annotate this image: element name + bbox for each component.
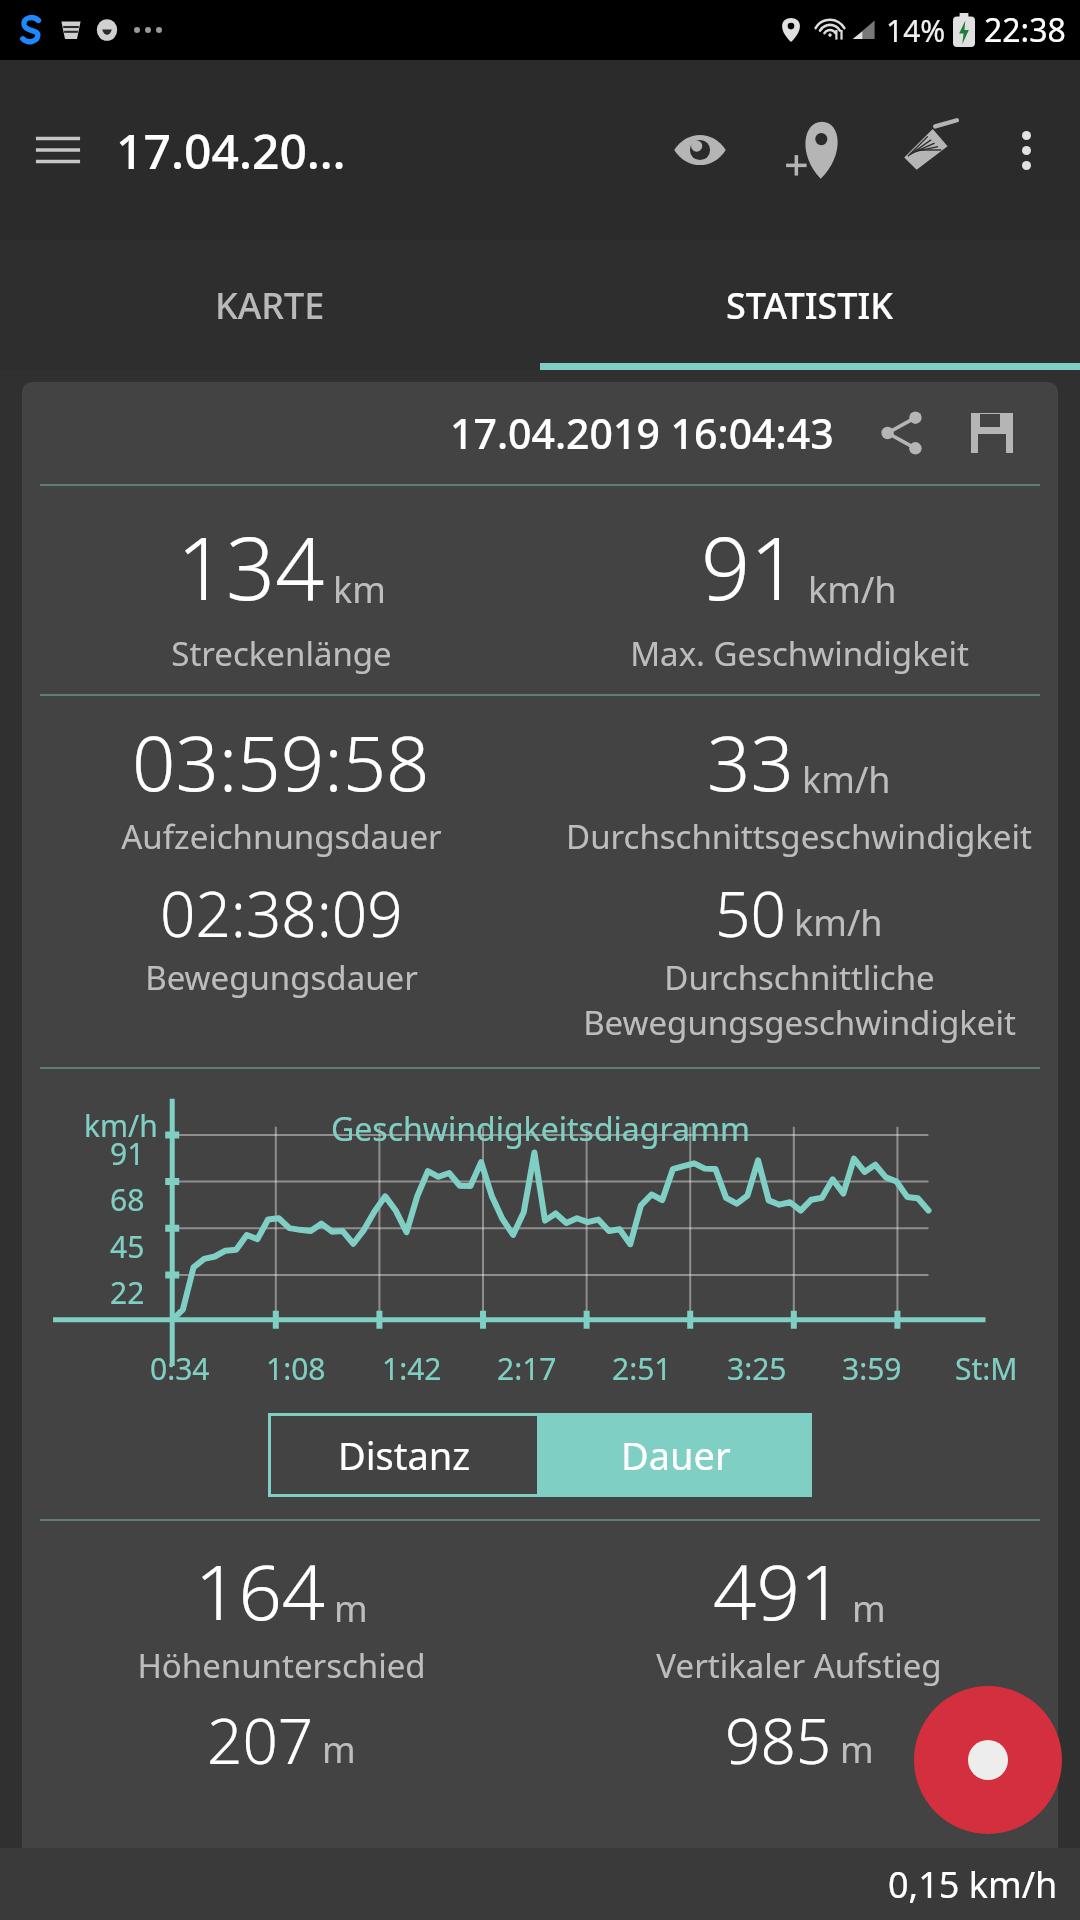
staticText: km — [333, 565, 386, 614]
staticText: 3:25 — [727, 1348, 787, 1389]
staticText: Distanz — [338, 1429, 471, 1481]
button[interactable]: Menü — [22, 114, 94, 186]
staticText: 3:59 — [842, 1348, 902, 1389]
staticText: 91 — [701, 508, 800, 625]
button[interactable]: KARTE — [0, 240, 540, 370]
staticText: 0,15 km/h — [888, 1860, 1058, 1909]
staticText: km/h — [802, 755, 891, 804]
staticText: 68 — [110, 1179, 145, 1220]
staticText: 50 — [715, 871, 786, 955]
staticText: m — [852, 1584, 886, 1633]
staticText: 02:38:09 — [160, 871, 403, 955]
button[interactable]: STATISTIK — [540, 240, 1080, 370]
staticText: 33 — [707, 710, 794, 814]
staticText: 2:17 — [497, 1348, 557, 1389]
button[interactable]: Teilen — [870, 401, 934, 465]
staticText: Geschwindigkeitsdiagramm — [331, 1107, 750, 1151]
staticText: m — [322, 1725, 356, 1774]
button[interactable]: Speichern — [960, 401, 1024, 465]
button[interactable]: Aufräumen — [886, 107, 972, 193]
button[interactable]: Aufnahme starten — [914, 1686, 1062, 1834]
staticText: 17.04.2019 16:04:43 — [450, 405, 834, 461]
staticText: km/h — [794, 898, 883, 947]
staticText: 2:51 — [612, 1348, 672, 1389]
staticText: m — [334, 1584, 368, 1633]
staticText: 491 — [713, 1539, 844, 1643]
staticText: m — [840, 1725, 874, 1774]
staticText: 1:08 — [266, 1348, 326, 1389]
staticText: Durchschnittliche Bewegungsgeschwindigke… — [583, 955, 1016, 1045]
staticText: STATISTIK — [726, 281, 894, 330]
staticText: Vertikaler Aufstieg — [656, 1643, 942, 1688]
staticText: 207 — [207, 1698, 314, 1782]
staticText: Aufzeichnungsdauer — [121, 814, 442, 859]
staticText: 14% — [886, 10, 946, 51]
staticText: 03:59:58 — [132, 710, 430, 814]
staticText: km/h — [808, 565, 897, 614]
button[interactable]: Ansicht — [660, 110, 740, 190]
staticText: 45 — [110, 1226, 145, 1267]
staticText: Bewegungsdauer — [145, 955, 418, 1000]
staticText: Dauer — [621, 1429, 731, 1481]
staticText: 0:34 — [150, 1348, 210, 1389]
button[interactable]: Wegpunkt hinzufügen — [770, 107, 856, 193]
staticText: Streckenlänge — [171, 631, 392, 676]
staticText: KARTE — [215, 281, 325, 330]
staticText: 22 — [110, 1272, 145, 1313]
staticText: 1:42 — [382, 1348, 442, 1389]
button[interactable]: Distanz — [268, 1413, 540, 1497]
staticText: St:M — [955, 1348, 1018, 1389]
staticText: Durchschnittsgeschwindigkeit — [566, 814, 1032, 859]
staticText: km/h — [84, 1105, 158, 1146]
staticText: Max. Geschwindigkeit — [630, 631, 969, 676]
button[interactable]: Mehr Optionen — [994, 118, 1058, 182]
staticText: 91 — [110, 1133, 145, 1174]
staticText: Höhenunterschied — [137, 1643, 426, 1688]
staticText: 17.04.20… — [116, 118, 346, 183]
button[interactable]: Dauer — [540, 1413, 812, 1497]
staticText: 164 — [195, 1539, 326, 1643]
staticText: 985 — [725, 1698, 832, 1782]
button[interactable]: 17.04.2019 16:04:43 — [22, 382, 1058, 484]
staticText: 22:38 — [984, 8, 1066, 52]
staticText: 134 — [177, 508, 325, 625]
